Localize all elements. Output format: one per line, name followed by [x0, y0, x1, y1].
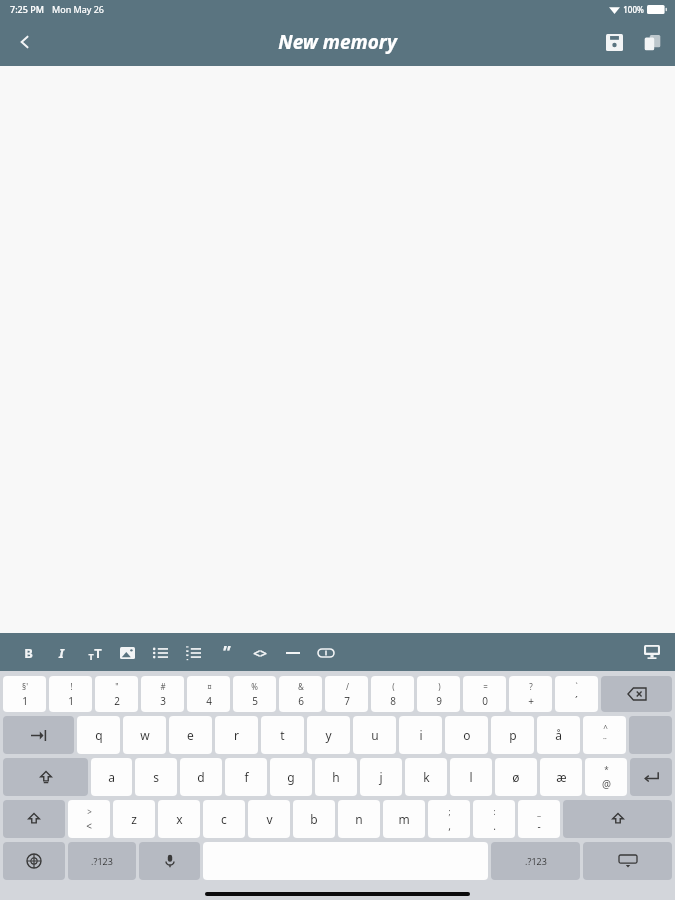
- staticText: I: [59, 644, 64, 662]
- button[interactable]: Italic: [45, 636, 78, 669]
- button[interactable]: y: [307, 716, 350, 754]
- button[interactable]: Back: [4, 21, 46, 63]
- button[interactable]: Bold: [12, 636, 45, 669]
- button[interactable]: m: [383, 800, 425, 838]
- staticText: h: [332, 769, 340, 785]
- button[interactable]: Bulleted list: [144, 636, 177, 669]
- button[interactable]: g: [270, 758, 312, 796]
- staticText: m: [398, 811, 410, 827]
- button[interactable]: x: [158, 800, 200, 838]
- button[interactable]: o: [445, 716, 488, 754]
- button[interactable]: Shift: [563, 800, 672, 838]
- button[interactable]: d: [180, 758, 222, 796]
- button[interactable]: r: [215, 716, 258, 754]
- button[interactable]: v: [248, 800, 290, 838]
- button[interactable]: :: [473, 800, 515, 838]
- staticText: f: [244, 769, 249, 785]
- button[interactable]: ø: [495, 758, 537, 796]
- staticText: .?123: [525, 855, 547, 867]
- button[interactable]: l: [450, 758, 492, 796]
- button[interactable]: Quote: [210, 636, 243, 669]
- button[interactable]: %: [233, 676, 276, 712]
- button[interactable]: Voice input: [139, 842, 200, 880]
- button[interactable]: p: [491, 716, 534, 754]
- button[interactable]: z: [113, 800, 155, 838]
- staticText: 0: [482, 694, 488, 708]
- button[interactable]: Enter: [630, 758, 672, 796]
- staticText: ": [115, 681, 119, 692]
- button[interactable]: e: [169, 716, 212, 754]
- button[interactable]: Copy: [633, 23, 671, 61]
- button[interactable]: ^: [583, 716, 626, 754]
- button[interactable]: ¤: [187, 676, 230, 712]
- staticText: 5: [252, 694, 258, 708]
- button[interactable]: Caps lock: [3, 758, 88, 796]
- button[interactable]: f: [225, 758, 267, 796]
- staticText: ^: [603, 722, 608, 733]
- button[interactable]: w: [123, 716, 166, 754]
- button[interactable]: å: [537, 716, 580, 754]
- button[interactable]: /: [325, 676, 368, 712]
- button[interactable]: Numbered list: [177, 636, 210, 669]
- button[interactable]: Tab: [3, 716, 74, 754]
- button[interactable]: c: [203, 800, 245, 838]
- button[interactable]: ": [95, 676, 138, 712]
- button[interactable]: _: [518, 800, 560, 838]
- button[interactable]: Backspace: [601, 676, 672, 712]
- button[interactable]: Hide keyboard: [583, 842, 672, 880]
- button[interactable]: Hide keyboard: [635, 635, 669, 669]
- staticText: 6: [298, 694, 304, 708]
- button[interactable]: *: [585, 758, 627, 796]
- button[interactable]: a: [91, 758, 132, 796]
- button[interactable]: (: [371, 676, 414, 712]
- button[interactable]: Shift: [3, 800, 65, 838]
- button[interactable]: #: [141, 676, 184, 712]
- button[interactable]: `: [555, 676, 598, 712]
- staticText: 9: [436, 694, 442, 708]
- button[interactable]: =: [463, 676, 506, 712]
- staticText: 1: [22, 694, 28, 708]
- button[interactable]: h: [315, 758, 357, 796]
- button[interactable]: Text size: [78, 636, 111, 669]
- staticText: j: [379, 769, 383, 785]
- button[interactable]: .?123: [68, 842, 136, 880]
- button[interactable]: >: [68, 800, 110, 838]
- staticText: ;: [448, 806, 451, 817]
- staticText: -: [537, 819, 541, 833]
- staticText: ´: [575, 694, 578, 708]
- button[interactable]: !: [49, 676, 92, 712]
- button[interactable]: Horizontal rule: [276, 636, 309, 669]
- button[interactable]: q: [77, 716, 120, 754]
- button[interactable]: s: [135, 758, 177, 796]
- staticText: ”: [223, 641, 231, 664]
- button[interactable]: Save: [595, 23, 633, 61]
- button[interactable]: ;: [428, 800, 470, 838]
- button[interactable]: j: [360, 758, 402, 796]
- staticText: ?: [529, 681, 533, 692]
- button[interactable]: ?: [509, 676, 552, 712]
- button[interactable]: .?123: [491, 842, 580, 880]
- staticText: Mon May 26: [52, 3, 104, 15]
- button[interactable]: Link: [309, 636, 342, 669]
- button[interactable]: n: [338, 800, 380, 838]
- button[interactable]: u: [353, 716, 396, 754]
- button[interactable]: §': [3, 676, 46, 712]
- staticText: 4: [206, 694, 212, 708]
- button[interactable]: b: [293, 800, 335, 838]
- button[interactable]: k: [405, 758, 447, 796]
- staticText: s: [153, 769, 159, 785]
- button[interactable]: æ: [540, 758, 582, 796]
- staticText: §': [22, 681, 28, 692]
- button[interactable]: &: [279, 676, 322, 712]
- staticText: 7:25 PM: [10, 3, 44, 15]
- button[interactable]: Change language: [3, 842, 65, 880]
- button[interactable]: i: [399, 716, 442, 754]
- button[interactable]: t: [261, 716, 304, 754]
- button[interactable]: Code: [243, 636, 276, 669]
- staticText: !: [70, 681, 73, 692]
- button[interactable]: ): [417, 676, 460, 712]
- staticText: ,: [448, 819, 451, 833]
- button[interactable]: Insert image: [111, 636, 144, 669]
